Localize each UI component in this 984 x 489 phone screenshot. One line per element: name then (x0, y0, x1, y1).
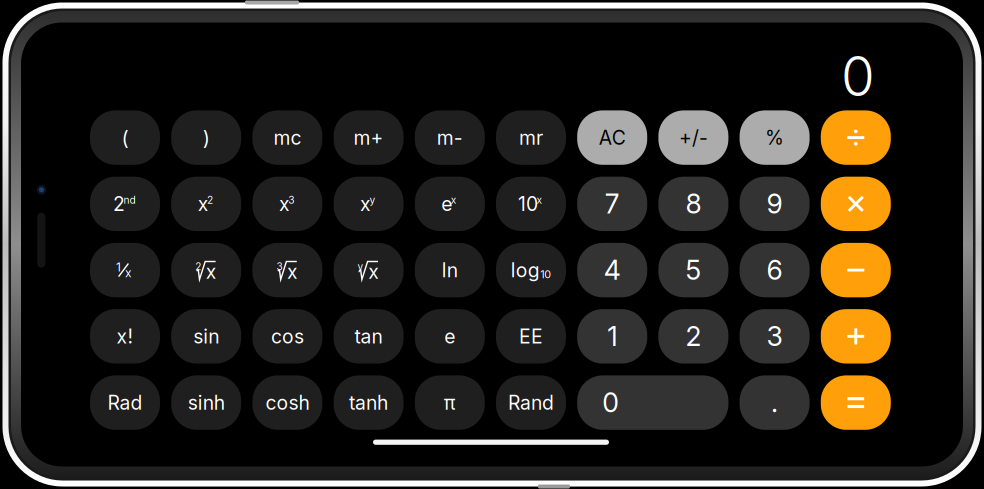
staticText: +/- (679, 126, 708, 149)
button[interactable]: Pi (415, 375, 485, 430)
staticText: tanh (349, 391, 388, 414)
button[interactable]: 1 (577, 309, 647, 363)
staticText: 0 (602, 386, 619, 419)
staticText: cosh (265, 391, 309, 414)
button[interactable]: Hyperbolic cosine (252, 375, 322, 430)
button[interactable]: x cubed (252, 177, 322, 231)
button[interactable]: Divide (821, 110, 891, 165)
staticText: 8 (685, 188, 701, 220)
staticText: tan (355, 325, 383, 348)
staticText: x (125, 266, 132, 280)
button[interactable]: Tangent (334, 309, 404, 363)
staticText: e (444, 325, 455, 348)
staticText: AC (599, 126, 626, 149)
button[interactable]: Memory subtract (415, 110, 485, 165)
button[interactable]: Cube root (252, 243, 322, 297)
staticText: x (279, 192, 290, 216)
staticText: x (287, 260, 298, 283)
staticText: 5 (685, 254, 701, 286)
button[interactable]: Percent (740, 110, 810, 165)
button[interactable]: 6 (740, 243, 810, 297)
staticText: ) (203, 125, 210, 150)
staticText: 3 (767, 320, 783, 352)
staticText: 10 (518, 192, 538, 216)
button[interactable]: One over x (90, 243, 160, 297)
staticText: cos (271, 325, 304, 348)
button[interactable]: Euler's number (415, 309, 485, 363)
button[interactable]: 2 (658, 309, 728, 363)
staticText: sin (193, 325, 219, 348)
button[interactable]: Radians (90, 375, 160, 430)
staticText: ( (121, 125, 128, 150)
staticText: m+ (354, 126, 384, 149)
button[interactable]: 8 (658, 177, 728, 231)
staticText: 2 (207, 194, 213, 206)
button[interactable]: All clear (577, 110, 647, 165)
button[interactable]: Memory recall (496, 110, 566, 165)
button[interactable]: Random (496, 375, 566, 430)
button[interactable]: 7 (577, 177, 647, 231)
staticText: 4 (604, 254, 621, 286)
button[interactable]: Add (821, 309, 891, 363)
staticText: 0 (841, 43, 875, 109)
staticText: x (206, 260, 217, 283)
button[interactable]: e to the power x (415, 177, 485, 231)
staticText: % (765, 126, 784, 149)
button[interactable]: Cosine (252, 309, 322, 363)
staticText: ln (442, 258, 458, 282)
staticText: x! (116, 325, 133, 348)
staticText: x (198, 192, 209, 216)
staticText: y (358, 261, 364, 273)
button[interactable]: Second functions (90, 177, 160, 231)
button[interactable]: y root of x (334, 243, 404, 297)
button[interactable]: Sine (171, 309, 241, 363)
button[interactable]: Hyperbolic tangent (334, 375, 404, 430)
button[interactable]: 5 (658, 243, 728, 297)
staticText: e (441, 192, 452, 216)
staticText: 1 (116, 260, 121, 274)
staticText: EE (519, 325, 543, 348)
staticText: 9 (767, 188, 783, 220)
staticText: mc (273, 126, 301, 149)
button[interactable]: 9 (740, 177, 810, 231)
button[interactable]: Log base ten (496, 243, 566, 297)
staticText: m- (437, 126, 463, 149)
button[interactable]: Exponent (496, 309, 566, 363)
button[interactable]: 4 (577, 243, 647, 297)
button[interactable]: Change sign (658, 110, 728, 165)
staticText: nd (123, 194, 135, 206)
button[interactable]: Close parenthesis (171, 110, 241, 165)
button[interactable]: 3 (740, 309, 810, 363)
staticText: 6 (767, 254, 783, 286)
staticText: x (451, 194, 457, 206)
staticText: 1 (607, 320, 617, 352)
staticText: 10 (540, 268, 551, 281)
button[interactable]: Subtract (821, 243, 891, 297)
button[interactable]: ten to the power x (496, 177, 566, 231)
button[interactable]: Open parenthesis (90, 110, 160, 165)
staticText: π (444, 391, 456, 414)
staticText: log (511, 258, 540, 282)
button[interactable]: Multiply (821, 177, 891, 231)
button[interactable]: Equals (821, 375, 891, 430)
button[interactable]: Square root (171, 243, 241, 297)
staticText: 3 (276, 261, 282, 273)
staticText: sinh (188, 391, 225, 414)
button[interactable]: Decimal point (740, 375, 810, 430)
button[interactable]: x to the power y (334, 177, 404, 231)
button[interactable]: Natural log (415, 243, 485, 297)
staticText: 2 (113, 192, 125, 216)
button[interactable]: Memory add (334, 110, 404, 165)
button[interactable]: x squared (171, 177, 241, 231)
staticText: 7 (605, 188, 620, 220)
button[interactable]: Memory clear (252, 110, 322, 165)
staticText: 3 (288, 194, 294, 206)
staticText: Rand (508, 391, 554, 414)
staticText: Rad (107, 391, 142, 414)
button[interactable]: 0 (577, 375, 728, 430)
staticText: y (369, 194, 375, 206)
staticText: mr (519, 126, 543, 149)
staticText: . (771, 386, 778, 419)
button[interactable]: Factorial (90, 309, 160, 363)
button[interactable]: Hyperbolic sine (171, 375, 241, 430)
